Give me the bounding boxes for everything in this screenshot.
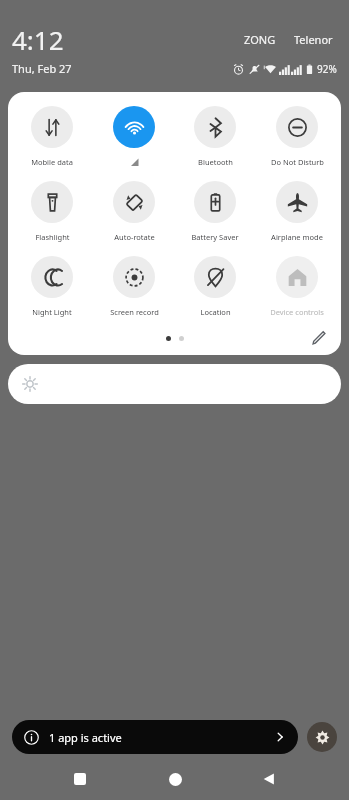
staticText: Telenor [294, 32, 333, 47]
button[interactable]: Location [177, 256, 253, 319]
staticText: Flashlight [35, 232, 70, 242]
button[interactable]: Do Not Disturb [259, 106, 335, 169]
staticText: Battery Saver [191, 232, 239, 242]
button[interactable]: Back [254, 766, 284, 792]
staticText: 4:12 [12, 22, 64, 57]
staticText: Location [200, 307, 231, 317]
button[interactable]: Brightness [8, 364, 341, 404]
button[interactable]: Home [160, 766, 190, 792]
staticText: Airplane mode [271, 232, 323, 242]
staticText: Auto-rotate [114, 232, 155, 242]
button[interactable]: Airplane mode [259, 181, 335, 244]
staticText: 1 app is active [49, 730, 122, 745]
staticText: Bluetooth [198, 157, 233, 167]
staticText: 92% [317, 62, 337, 76]
button[interactable]: Recents [65, 766, 95, 792]
button[interactable]: Mobile data [14, 106, 90, 169]
button[interactable]: Edit tiles [307, 326, 331, 350]
staticText: Screen record [110, 307, 159, 317]
staticText: Device controls [270, 307, 324, 317]
button[interactable]: Flashlight [14, 181, 90, 244]
button[interactable]: Settings [307, 722, 337, 752]
button[interactable]: Night Light [14, 256, 90, 319]
button[interactable]: Screen record [96, 256, 172, 319]
button[interactable]: Bluetooth [177, 106, 253, 169]
button[interactable]: Auto-rotate [96, 181, 172, 244]
button[interactable]: Device controls [259, 256, 335, 319]
staticText: Mobile data [31, 157, 73, 167]
button[interactable]: Wi-Fi [96, 106, 172, 169]
button[interactable]: 1 app is active [12, 720, 298, 754]
staticText: Do Not Disturb [271, 157, 324, 167]
staticText: ZONG [244, 32, 276, 47]
staticText: Thu, Feb 27 [12, 61, 72, 76]
staticText: Night Light [32, 307, 72, 317]
button[interactable]: Battery Saver [177, 181, 253, 244]
